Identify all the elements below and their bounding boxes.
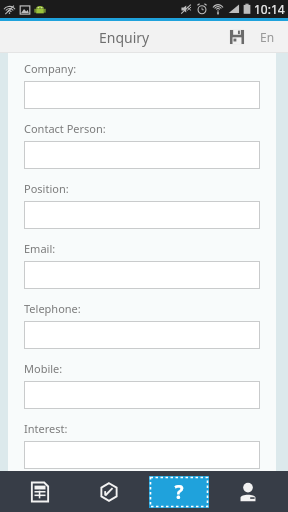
- button[interactable]: En: [252, 21, 282, 53]
- staticText: 10:14: [254, 1, 285, 17]
- button[interactable]: Contacts: [218, 471, 278, 512]
- staticText: Company:: [24, 61, 77, 76]
- staticText: Telephone:: [24, 301, 81, 316]
- button[interactable]: [24, 261, 260, 289]
- button[interactable]: [24, 81, 260, 109]
- button[interactable]: [24, 381, 260, 409]
- staticText: Enquiry: [99, 28, 150, 47]
- staticText: Contact Person:: [24, 121, 106, 136]
- staticText: Mobile:: [24, 361, 63, 376]
- button[interactable]: [24, 441, 260, 469]
- staticText: En: [260, 29, 275, 45]
- button[interactable]: Products: [79, 471, 139, 512]
- button[interactable]: Help: [149, 471, 209, 512]
- staticText: Email:: [24, 241, 56, 256]
- button[interactable]: [24, 141, 260, 169]
- staticText: Interest:: [24, 421, 68, 436]
- staticText: Position:: [24, 181, 69, 196]
- button[interactable]: Save: [222, 22, 252, 52]
- button[interactable]: [24, 321, 260, 349]
- button[interactable]: [24, 201, 260, 229]
- staticText: ?: [174, 479, 184, 505]
- button[interactable]: Forms: [10, 471, 70, 512]
